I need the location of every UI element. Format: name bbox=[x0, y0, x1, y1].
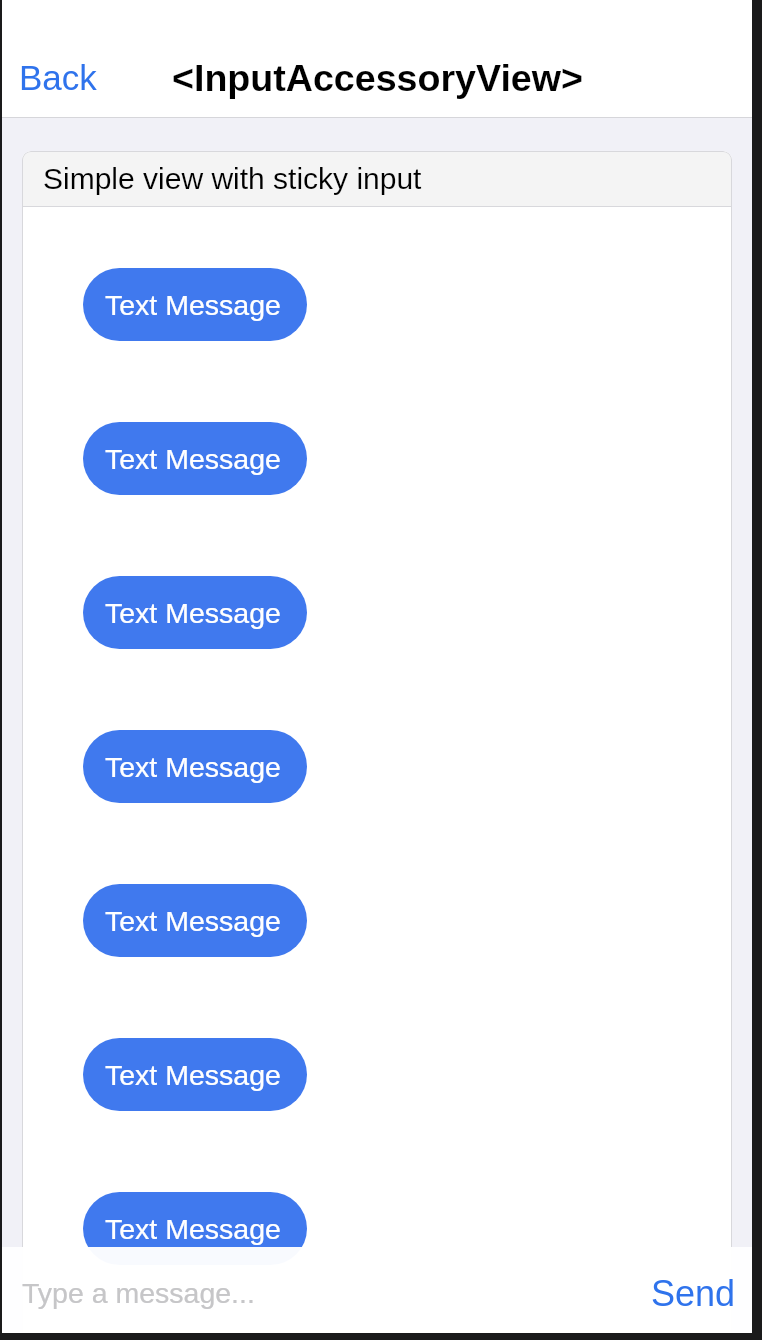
staticText: Text Message bbox=[105, 443, 281, 475]
staticText: Send bbox=[651, 1273, 736, 1313]
staticText: Text Message bbox=[105, 1213, 281, 1245]
button[interactable]: Text Message bbox=[83, 730, 307, 803]
staticText: Text Message bbox=[105, 597, 281, 629]
button[interactable]: Back bbox=[2, 46, 118, 109]
staticText: Text Message bbox=[105, 289, 281, 321]
button[interactable]: Text Message bbox=[83, 576, 307, 649]
staticText: Text Message bbox=[105, 905, 281, 937]
button[interactable]: Send bbox=[633, 1263, 752, 1323]
staticText: <InputAccessoryView> bbox=[172, 57, 583, 99]
staticText: Text Message bbox=[105, 1059, 281, 1091]
button[interactable]: Text Message bbox=[83, 422, 307, 495]
button[interactable]: Text Message bbox=[83, 1038, 307, 1111]
staticText: Back bbox=[19, 58, 97, 97]
staticText: Type a message... bbox=[22, 1277, 255, 1309]
button[interactable]: Text Message bbox=[83, 268, 307, 341]
button[interactable]: Text Message bbox=[83, 884, 307, 957]
button[interactable]: Type a message... bbox=[2, 1267, 276, 1319]
staticText: Simple view with sticky input bbox=[43, 162, 422, 196]
button[interactable]: Text Message bbox=[83, 1192, 307, 1265]
staticText: Text Message bbox=[105, 751, 281, 783]
